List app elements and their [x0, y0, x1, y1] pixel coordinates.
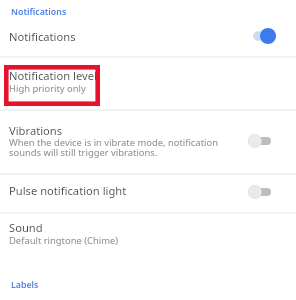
button[interactable]: Toggle pulse notification light — [248, 182, 278, 202]
staticText: When the device is in vibrate mode, noti… — [9, 136, 218, 149]
button[interactable]: Notification level — [0, 58, 296, 109]
staticText: Labels — [11, 279, 39, 291]
staticText: High priority only — [9, 82, 86, 95]
staticText: Pulse notification light — [9, 183, 127, 198]
button[interactable]: Pulse notification light — [0, 175, 296, 213]
staticText: Notification level — [9, 68, 97, 83]
button[interactable]: Notifications — [0, 24, 296, 56]
staticText: Sound — [9, 220, 43, 235]
button[interactable]: Sound — [0, 214, 296, 256]
button[interactable]: Toggle notifications — [253, 26, 283, 46]
button[interactable]: Vibrations — [0, 110, 296, 174]
staticText: Vibrations — [9, 123, 63, 138]
staticText: Notifications — [11, 6, 67, 18]
button[interactable]: Toggle vibrations — [248, 131, 278, 151]
staticText: Notifications — [9, 29, 76, 44]
staticText: sounds will still trigger vibrations. — [9, 146, 158, 159]
staticText: Default ringtone (Chime) — [9, 234, 119, 247]
